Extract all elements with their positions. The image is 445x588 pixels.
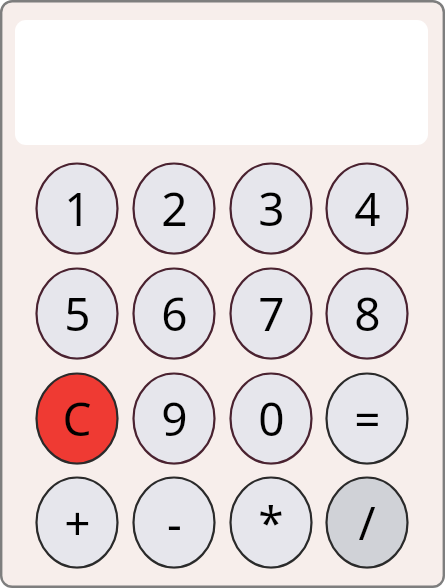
- staticText: 9: [161, 387, 188, 450]
- staticText: *: [258, 491, 284, 554]
- button[interactable]: +: [35, 476, 119, 569]
- staticText: 3: [258, 177, 285, 240]
- button[interactable]: 2: [132, 162, 216, 255]
- staticText: =: [354, 387, 381, 450]
- button[interactable]: 3: [229, 162, 313, 255]
- button[interactable]: 6: [132, 267, 216, 360]
- button[interactable]: -: [132, 476, 216, 569]
- button[interactable]: 1: [35, 162, 119, 255]
- staticText: +: [64, 491, 91, 554]
- staticText: 0: [258, 387, 285, 450]
- button[interactable]: C: [35, 372, 119, 465]
- button[interactable]: *: [229, 476, 313, 569]
- staticText: C: [62, 387, 92, 450]
- staticText: 4: [354, 177, 381, 240]
- button[interactable]: 8: [325, 267, 409, 360]
- button[interactable]: 5: [35, 267, 119, 360]
- button[interactable]: 4: [325, 162, 409, 255]
- button[interactable]: 7: [229, 267, 313, 360]
- staticText: 8: [354, 282, 381, 345]
- staticText: 2: [161, 177, 188, 240]
- button[interactable]: /: [325, 476, 409, 569]
- staticText: -: [167, 491, 182, 554]
- staticText: 1: [64, 177, 91, 240]
- staticText: 5: [64, 282, 91, 345]
- staticText: 7: [258, 282, 285, 345]
- button[interactable]: 9: [132, 372, 216, 465]
- button[interactable]: 0: [229, 372, 313, 465]
- staticText: /: [358, 491, 376, 554]
- button[interactable]: =: [325, 372, 409, 465]
- staticText: 6: [161, 282, 188, 345]
